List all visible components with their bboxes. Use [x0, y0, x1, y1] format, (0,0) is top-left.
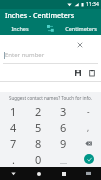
staticText: 4 — [10, 120, 17, 135]
button[interactable]: Centimeters — [60, 22, 101, 35]
staticText: Enter number — [5, 51, 45, 59]
staticText: Inches - Centimeters — [5, 11, 75, 21]
button[interactable]: Save — [73, 68, 83, 78]
button[interactable]: 8 — [26, 135, 51, 151]
staticText: 1 — [10, 104, 17, 119]
staticText: 8 — [35, 136, 42, 151]
staticText: 2 — [35, 104, 42, 119]
button[interactable]: Clear — [75, 40, 84, 49]
button[interactable]: 9 — [51, 135, 76, 151]
staticText: 6 — [60, 120, 67, 135]
button[interactable]: Space — [51, 151, 76, 167]
button[interactable]: . — [0, 151, 26, 167]
button[interactable]: Back — [0, 167, 26, 180]
button[interactable]: Keyboard — [76, 167, 101, 180]
button[interactable]: Swap units — [40, 22, 60, 35]
button[interactable]: 0 — [26, 151, 51, 167]
button[interactable]: Inches — [0, 22, 40, 35]
staticText: Suggest contact names? Touch for info. — [9, 95, 92, 101]
staticText: , — [87, 122, 90, 133]
button[interactable]: Backspace — [76, 135, 101, 151]
staticText: 0 — [35, 152, 42, 167]
staticText: . — [12, 152, 15, 167]
staticText: 11:34 — [86, 1, 99, 8]
staticText: 9 — [60, 136, 67, 151]
button[interactable]: 5 — [26, 119, 51, 135]
button[interactable]: Suggest contact names? Touch for info. — [0, 92, 101, 103]
button[interactable]: 2 — [26, 103, 51, 119]
button[interactable]: 7 — [0, 135, 26, 151]
staticText: - — [87, 106, 90, 117]
staticText: 5 — [35, 120, 42, 135]
staticText: 7 — [10, 136, 17, 151]
staticText: Centimeters — [65, 25, 97, 32]
button[interactable]: 1 — [0, 103, 26, 119]
button[interactable]: - — [76, 103, 101, 119]
button[interactable]: 4 — [0, 119, 26, 135]
button[interactable]: 6 — [51, 119, 76, 135]
button[interactable]: Recents — [51, 167, 76, 180]
button[interactable]: Copy — [87, 68, 97, 78]
staticText: 3 — [60, 104, 67, 119]
staticText: Inches — [11, 25, 29, 32]
button[interactable]: 3 — [51, 103, 76, 119]
button[interactable]: Enter — [84, 154, 94, 164]
button[interactable]: Home — [26, 167, 51, 180]
button[interactable]: , — [76, 119, 101, 135]
